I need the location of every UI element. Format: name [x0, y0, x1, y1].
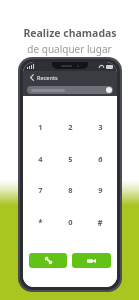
- button[interactable]: 3: [90, 119, 110, 135]
- staticText: Recents: [37, 74, 58, 81]
- button[interactable]: 4: [30, 151, 50, 167]
- staticText: 3: [98, 122, 103, 132]
- staticText: Realize chamadas: [23, 26, 117, 40]
- staticText: de qualquer lugar: [27, 42, 112, 56]
- staticText: 4: [38, 154, 43, 164]
- staticText: 2: [68, 122, 73, 132]
- staticText: *: [38, 217, 43, 228]
- button[interactable]: #: [90, 214, 110, 230]
- staticText: 0: [68, 217, 73, 227]
- staticText: 9: [98, 185, 103, 195]
- button[interactable]: 0: [60, 214, 80, 230]
- button[interactable]: 2: [60, 119, 80, 135]
- button[interactable]: [27, 86, 113, 94]
- button[interactable]: *: [30, 214, 50, 230]
- staticText: 8: [68, 185, 73, 195]
- staticText: 7: [38, 185, 43, 195]
- button[interactable]: 7: [30, 182, 50, 198]
- button[interactable]: 5: [60, 151, 80, 167]
- staticText: 6: [98, 154, 103, 164]
- button[interactable]: 8: [60, 182, 80, 198]
- staticText: 1: [38, 122, 43, 132]
- button[interactable]: Video call: [72, 253, 111, 268]
- button[interactable]: 6: [90, 151, 110, 167]
- button[interactable]: 1: [30, 119, 50, 135]
- button[interactable]: Call: [29, 253, 67, 268]
- staticText: 5: [68, 154, 73, 164]
- button[interactable]: 9: [90, 182, 110, 198]
- button[interactable]: Back: [27, 73, 36, 82]
- staticText: #: [97, 217, 103, 228]
